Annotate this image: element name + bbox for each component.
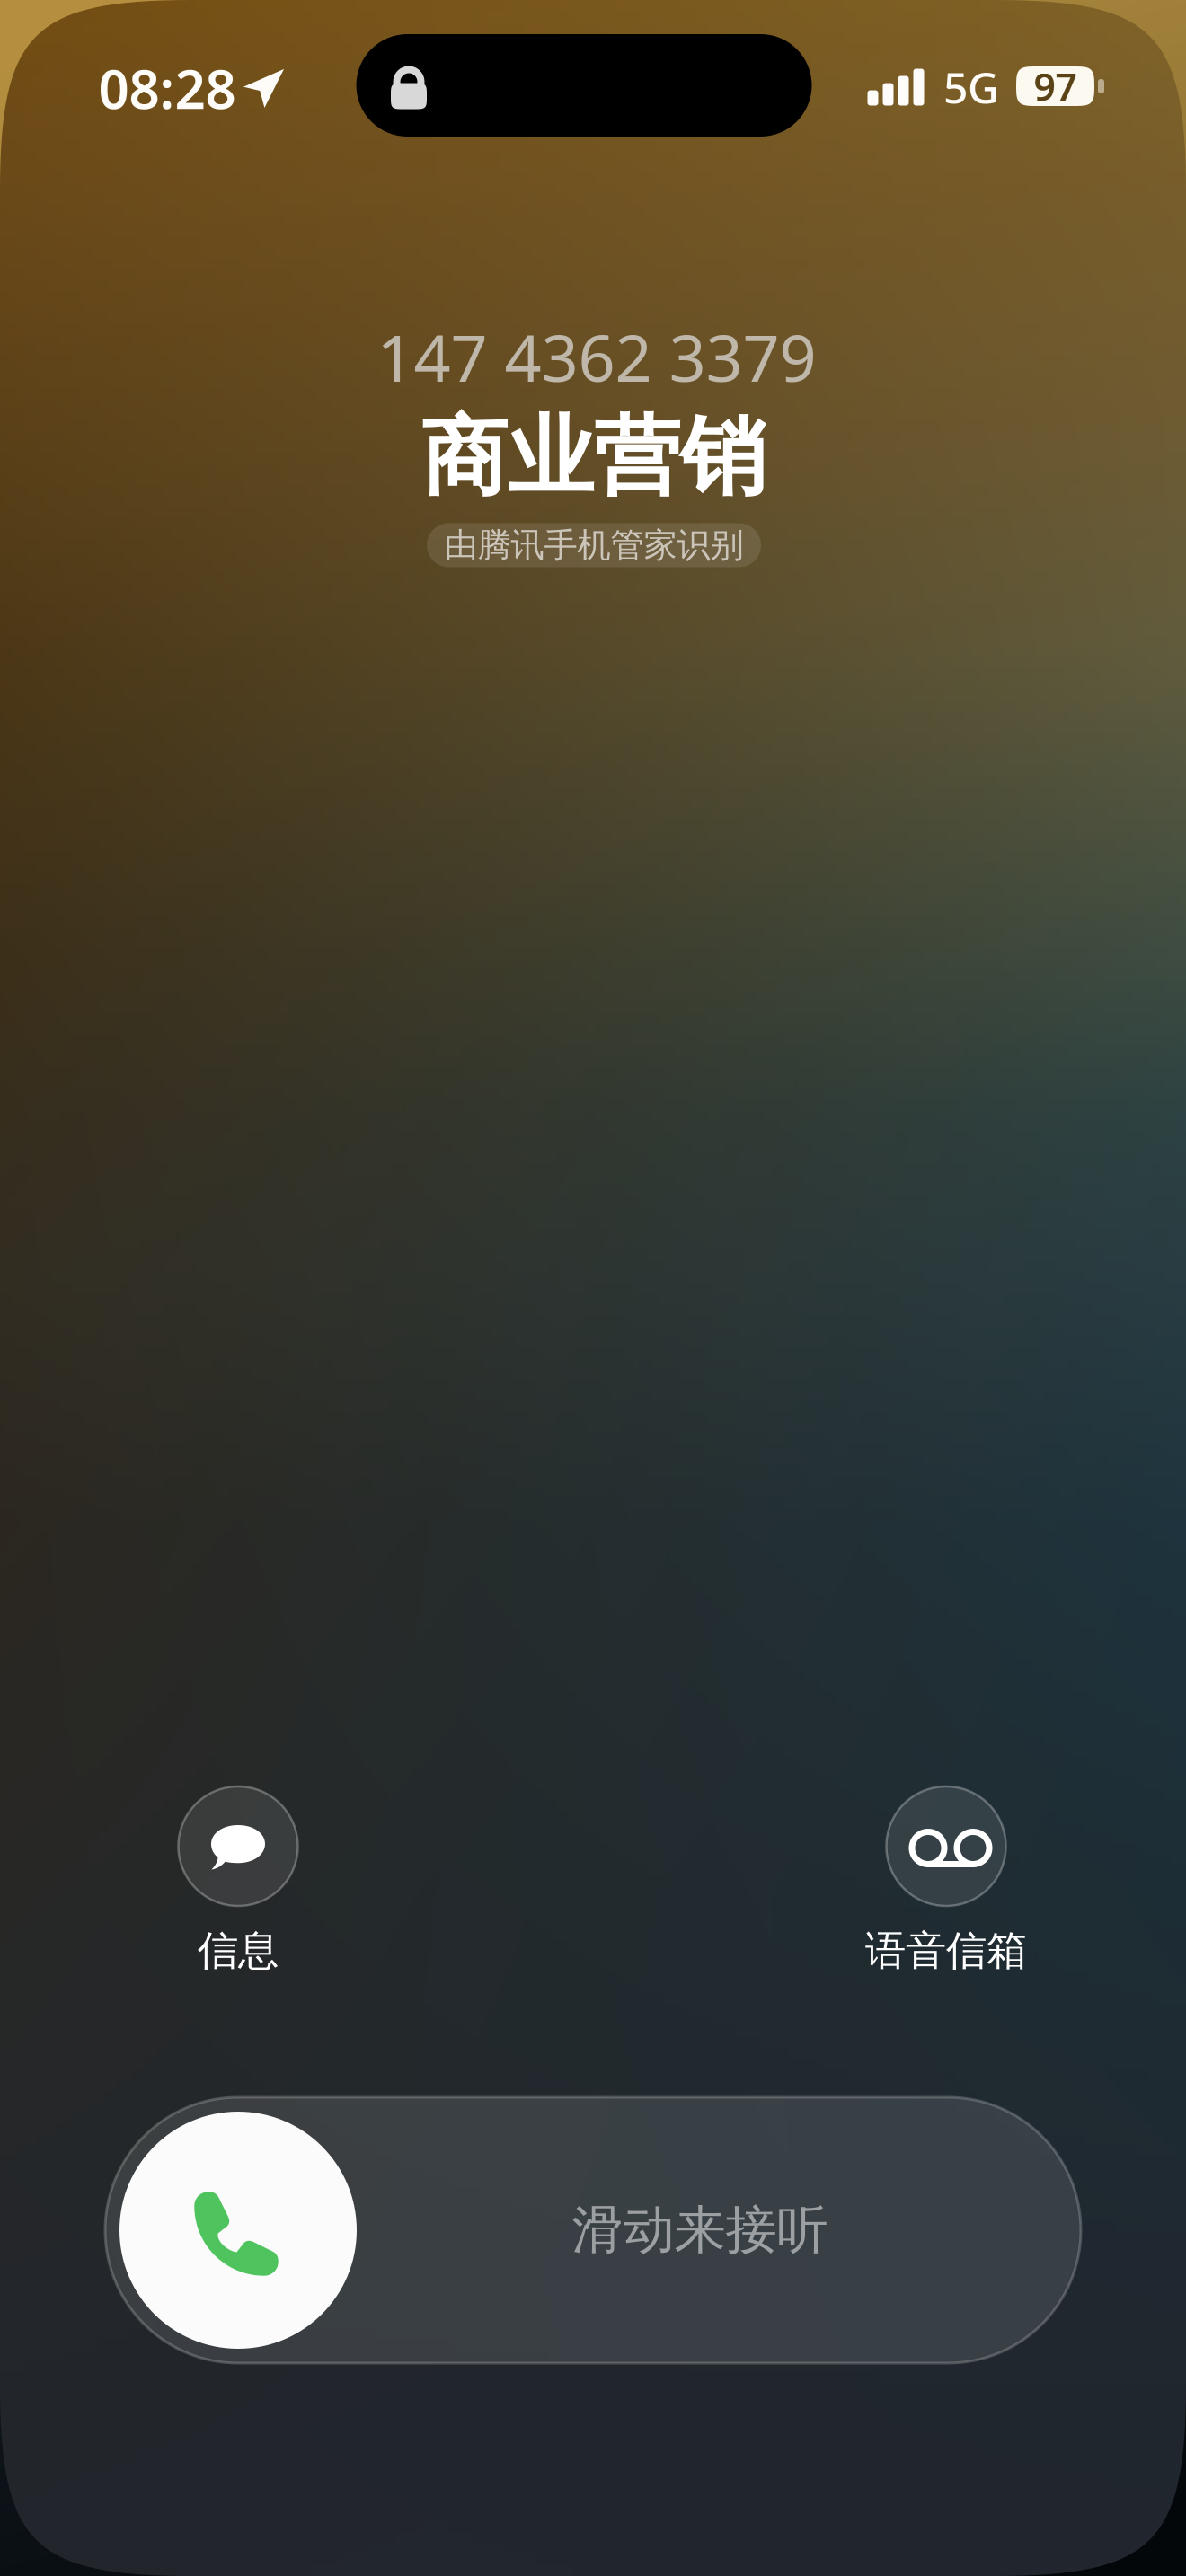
staticText: 97 (1034, 61, 1077, 112)
staticText: 08:28 (98, 52, 236, 124)
staticText: 147 4362 3379 (377, 314, 816, 400)
staticText: 商业营销 (421, 404, 766, 510)
staticText: 语音信箱 (865, 1926, 1027, 1976)
button[interactable]: 语音信箱 (802, 1786, 1090, 1968)
staticText: 信息 (198, 1926, 279, 1976)
staticText: 滑动来接听 (572, 2199, 828, 2262)
staticText: 由腾讯手机管家识别 (444, 525, 743, 566)
button[interactable]: 信息 (94, 1786, 382, 1968)
staticText: 5G (943, 58, 999, 116)
button[interactable]: 滑动来接听 (105, 2097, 1081, 2363)
